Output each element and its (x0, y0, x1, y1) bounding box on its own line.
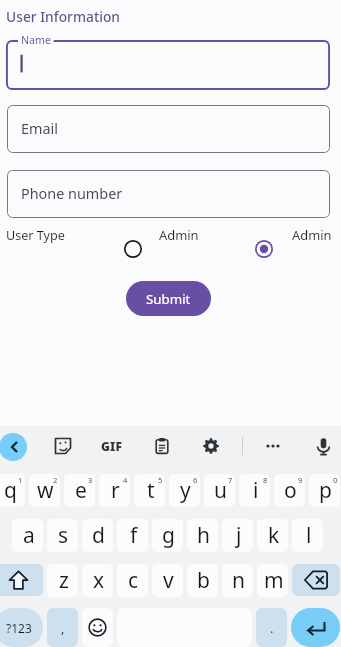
button[interactable]: Clipboard (148, 432, 176, 460)
button[interactable]: Back (0, 433, 27, 461)
staticText: 9 (298, 475, 303, 485)
button[interactable]: u (204, 474, 235, 507)
button[interactable]: Shift (0, 564, 43, 596)
staticText: m (264, 566, 284, 595)
staticText: 7 (228, 475, 233, 485)
button[interactable]: v (152, 564, 183, 597)
button[interactable]: o (274, 474, 305, 507)
button[interactable]: e (64, 474, 95, 507)
staticText: z (59, 566, 69, 595)
button[interactable]: b (187, 564, 218, 597)
button[interactable]: y (169, 474, 200, 507)
staticText: h (197, 521, 210, 550)
staticText: 4 (123, 475, 128, 485)
staticText: r (111, 476, 120, 505)
button[interactable]: l (292, 519, 323, 552)
button[interactable]: r (99, 474, 130, 507)
staticText: 2 (53, 475, 58, 485)
staticText: k (268, 521, 280, 550)
staticText: User Information (6, 7, 121, 26)
staticText: 1 (18, 475, 23, 485)
button[interactable]: , (47, 608, 78, 647)
staticText: User Type (6, 227, 65, 244)
button[interactable]: Backspace (292, 564, 340, 596)
staticText: ?123 (6, 620, 32, 636)
staticText: 5 (158, 475, 163, 485)
button[interactable]: p (309, 474, 340, 507)
staticText: a (23, 521, 35, 550)
staticText: s (58, 521, 69, 550)
staticText: d (92, 521, 105, 550)
staticText: g (162, 521, 175, 550)
staticText: l (306, 521, 312, 550)
button[interactable]: h (187, 519, 218, 552)
button[interactable]: Email (7, 105, 330, 153)
staticText: f (130, 521, 138, 550)
button[interactable]: Submit (126, 281, 211, 316)
button[interactable]: c (117, 564, 148, 597)
staticText: c (128, 566, 139, 595)
button[interactable]: More options (259, 432, 287, 460)
button[interactable]: k (257, 519, 288, 552)
button[interactable]: Phone number (7, 170, 330, 218)
button[interactable]: q (0, 474, 25, 507)
button[interactable]: Emoji (82, 608, 113, 647)
button[interactable]: w (29, 474, 60, 507)
staticText: 3 (88, 475, 93, 485)
staticText: n (232, 566, 245, 595)
staticText: v (163, 566, 174, 595)
staticText: q (4, 476, 17, 505)
staticText: i (253, 476, 259, 505)
staticText: u (214, 476, 227, 505)
staticText: p (319, 476, 332, 505)
staticText: w (37, 476, 54, 505)
staticText: Phone number (21, 184, 123, 204)
button[interactable]: Admin selected (248, 233, 280, 265)
staticText: 6 (193, 475, 198, 485)
staticText: y (180, 476, 191, 505)
button[interactable]: n (222, 564, 253, 597)
staticText: 0 (333, 475, 338, 485)
button[interactable]: t (134, 474, 165, 507)
button[interactable]: ?123 (0, 608, 43, 647)
button[interactable]: z (47, 564, 78, 597)
staticText: j (236, 521, 242, 550)
button[interactable]: GIF (98, 432, 126, 460)
button[interactable]: Stickers (49, 432, 77, 460)
staticText: o (284, 476, 297, 505)
staticText: Name (21, 33, 51, 47)
staticText: . (270, 619, 274, 637)
button[interactable]: Enter (291, 608, 340, 647)
staticText: Admin (292, 226, 332, 244)
button[interactable]: m (257, 564, 288, 597)
button[interactable]: s (47, 519, 78, 552)
staticText: 8 (263, 475, 268, 485)
button[interactable]: Settings (197, 432, 225, 460)
button[interactable]: d (82, 519, 113, 552)
staticText: , (61, 619, 65, 637)
staticText: t (147, 476, 155, 505)
button[interactable]: a (12, 519, 43, 552)
button[interactable]: Voice input (309, 432, 337, 460)
button[interactable]: Admin (117, 233, 149, 265)
staticText: b (197, 566, 210, 595)
button[interactable]: g (152, 519, 183, 552)
staticText: GIF (101, 438, 123, 454)
staticText: Email (21, 119, 58, 139)
button[interactable]: . (256, 608, 287, 647)
staticText: e (75, 476, 87, 505)
staticText: x (93, 566, 105, 595)
button[interactable]: j (222, 519, 253, 552)
staticText: Admin (159, 226, 199, 244)
button[interactable]: i (239, 474, 270, 507)
staticText: Submit (146, 290, 191, 308)
button[interactable]: x (82, 564, 113, 597)
button[interactable]: f (117, 519, 148, 552)
